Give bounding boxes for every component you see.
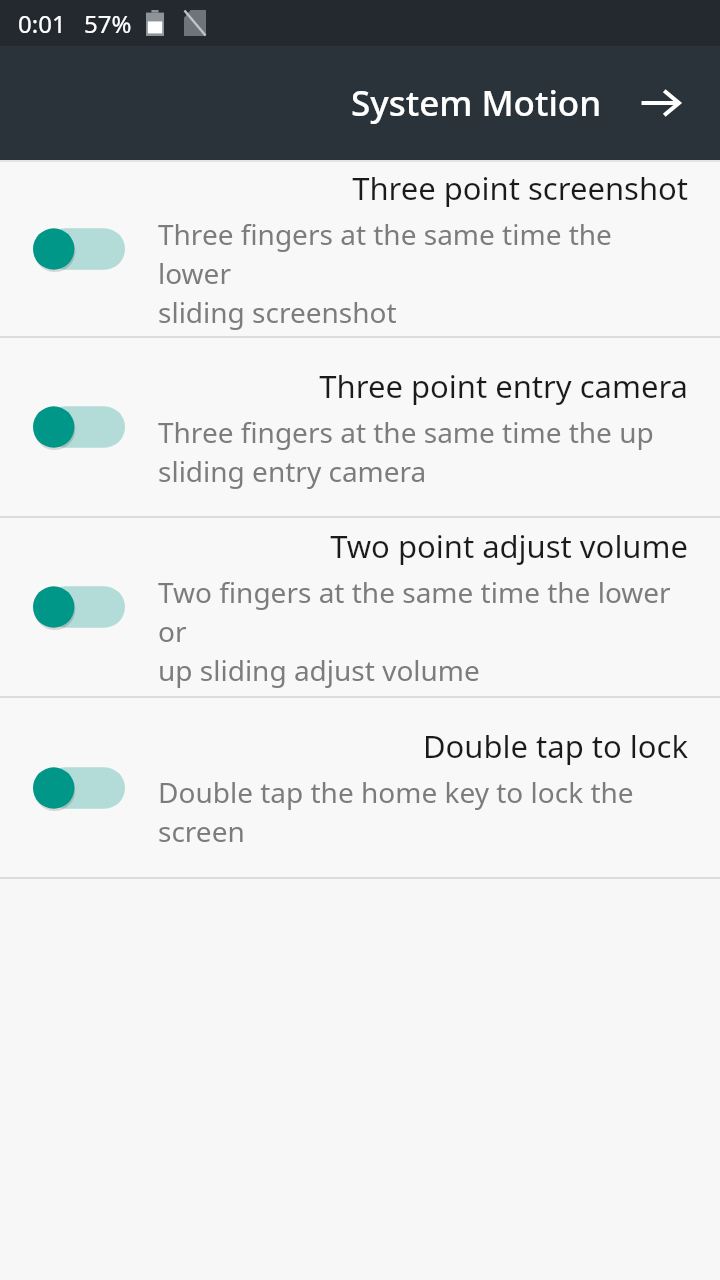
button[interactable]: Toggle [0,698,720,877]
staticText: 57% [84,7,132,40]
button[interactable]: Toggle [0,162,720,336]
staticText: Double tap the home key to lock the scre… [158,773,688,850]
staticText: Two point adjust volume [158,525,688,567]
staticText: Double tap to lock [158,725,688,767]
staticText: Three point entry camera [158,365,688,407]
button[interactable]: Next [634,77,686,129]
button[interactable]: Toggle [33,765,125,811]
staticText: Three point screenshot [158,167,688,209]
button[interactable]: Toggle [33,226,125,272]
button[interactable]: Toggle [0,338,720,516]
staticText: Three fingers at the same time the lower… [158,215,688,331]
button[interactable]: Toggle [33,404,125,450]
staticText: Two fingers at the same time the lower o… [158,573,688,689]
button[interactable]: Toggle [33,584,125,630]
button[interactable]: Toggle [0,518,720,696]
staticText: Three fingers at the same time the up sl… [158,413,688,490]
staticText: 0:01 [18,7,66,40]
staticText: System Motion [351,79,602,127]
